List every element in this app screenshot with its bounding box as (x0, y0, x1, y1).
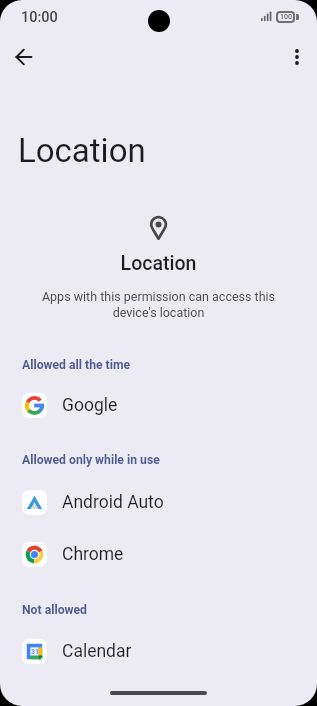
staticText: 31 (31, 648, 39, 656)
staticText: 100 (280, 13, 292, 21)
button[interactable] (4, 37, 44, 77)
button[interactable] (277, 37, 317, 77)
staticText: Not allowed (22, 603, 87, 617)
staticText: Android Auto (62, 492, 164, 513)
staticText: Google (62, 395, 118, 416)
staticText: 10:00 (21, 9, 58, 26)
staticText: Allowed all the time (22, 358, 131, 372)
staticText: Apps with this permission can access thi… (0, 289, 317, 320)
staticText: Location (0, 252, 317, 275)
button[interactable]: 31 (0, 625, 317, 677)
staticText: Allowed only while in use (22, 453, 160, 467)
button[interactable]: Chrome (0, 528, 317, 580)
staticText: Location (18, 131, 146, 170)
staticText: Calendar (62, 641, 132, 662)
button[interactable]: Google (0, 379, 317, 431)
button[interactable]: Android Auto (0, 476, 317, 528)
staticText: Chrome (62, 544, 124, 565)
